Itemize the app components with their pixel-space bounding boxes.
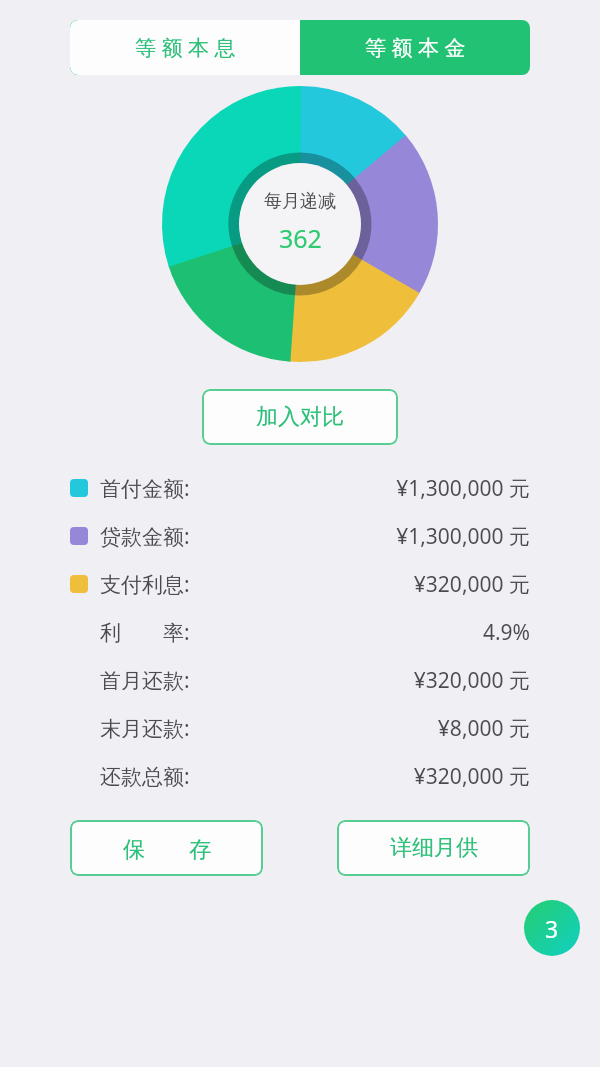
staticText: 还款总额: — [100, 762, 190, 791]
staticText: 贷款金额: — [100, 522, 190, 551]
button[interactable]: 还款总额: — [0, 752, 600, 800]
button[interactable]: 保 存 — [70, 820, 263, 876]
staticText: ¥8,000 元 — [437, 714, 530, 743]
button[interactable]: 首月还款: — [0, 656, 600, 704]
staticText: ¥320,000 元 — [413, 762, 530, 791]
button[interactable]: 等 额 本 息 — [70, 20, 300, 75]
button[interactable]: 末月还款: — [0, 704, 600, 752]
staticText: 末月还款: — [100, 714, 190, 743]
staticText: ¥1,300,000 元 — [396, 474, 530, 503]
staticText: 3 — [545, 913, 559, 944]
staticText: 详细月供 — [390, 834, 478, 862]
button[interactable]: 支付利息: — [0, 560, 600, 608]
staticText: 加入对比 — [256, 403, 344, 431]
staticText: 每月递减 — [264, 190, 336, 213]
staticText: 保 存 — [123, 833, 211, 863]
staticText: 4.9% — [482, 618, 530, 647]
staticText: 首月还款: — [100, 666, 190, 695]
staticText: 支付利息: — [100, 570, 190, 599]
staticText: 362 — [279, 221, 322, 255]
staticText: ¥320,000 元 — [413, 570, 530, 599]
button[interactable]: 加入对比 — [202, 389, 398, 445]
button[interactable]: 等 额 本 金 — [300, 20, 530, 75]
staticText: 利 率: — [100, 618, 190, 647]
staticText: 等 额 本 金 — [365, 33, 466, 62]
button[interactable]: 首付金额: — [0, 464, 600, 512]
button[interactable]: 利 率: — [0, 608, 600, 656]
button[interactable]: 详细月供 — [337, 820, 530, 876]
button[interactable]: 贷款金额: — [0, 512, 600, 560]
staticText: 等 额 本 息 — [135, 33, 236, 62]
button[interactable]: 比较列表，3 项 — [524, 900, 580, 956]
staticText: ¥1,300,000 元 — [396, 522, 530, 551]
staticText: 首付金额: — [100, 474, 190, 503]
staticText: ¥320,000 元 — [413, 666, 530, 695]
